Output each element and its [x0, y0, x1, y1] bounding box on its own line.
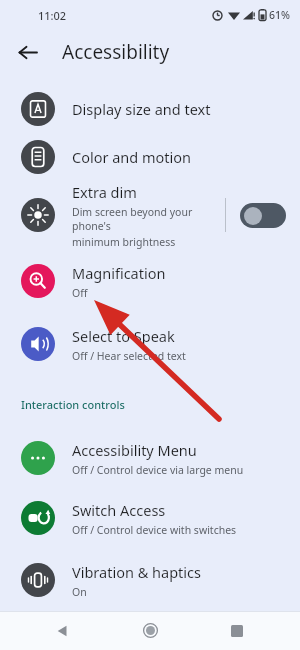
button[interactable]: Accessibility Menu — [0, 429, 300, 487]
staticText: Interaction controls — [21, 397, 125, 412]
staticText: Magnification — [72, 263, 166, 283]
staticText: Display size and text — [72, 99, 211, 119]
staticText: Off / Hear selected text — [72, 349, 186, 363]
button[interactable]: Color and motion — [0, 133, 300, 181]
staticText: Accessibility Menu — [72, 440, 197, 460]
button[interactable]: Recent apps — [213, 611, 261, 650]
button[interactable]: Back — [39, 611, 87, 650]
button[interactable]: Display size and text — [0, 85, 300, 133]
button[interactable]: Extra dim toggle — [226, 181, 300, 249]
button[interactable]: Vibration & haptics — [0, 549, 300, 611]
button[interactable]: Home — [126, 611, 174, 650]
button[interactable]: Back — [6, 31, 48, 73]
staticText: Dim screen beyond your phone's — [72, 205, 225, 233]
staticText: Off — [72, 286, 88, 300]
staticText: Accessibility — [62, 39, 170, 65]
button[interactable]: Magnification — [0, 249, 300, 313]
staticText: minimum brightness — [72, 235, 176, 249]
staticText: 61% — [269, 8, 290, 22]
staticText: 11:02 — [38, 8, 67, 23]
button[interactable]: Extra dim — [0, 181, 225, 249]
button[interactable]: Select to Speak — [0, 313, 300, 375]
staticText: Extra dim — [72, 182, 137, 202]
staticText: Off / Control device with switches — [72, 523, 237, 537]
staticText: Off / Control device via large menu — [72, 463, 244, 477]
staticText: On — [72, 585, 87, 599]
staticText: Select to Speak — [72, 326, 175, 346]
staticText: Color and motion — [72, 147, 192, 167]
button[interactable]: Switch Access — [0, 487, 300, 549]
staticText: Vibration & haptics — [72, 562, 201, 582]
staticText: Switch Access — [72, 500, 166, 520]
